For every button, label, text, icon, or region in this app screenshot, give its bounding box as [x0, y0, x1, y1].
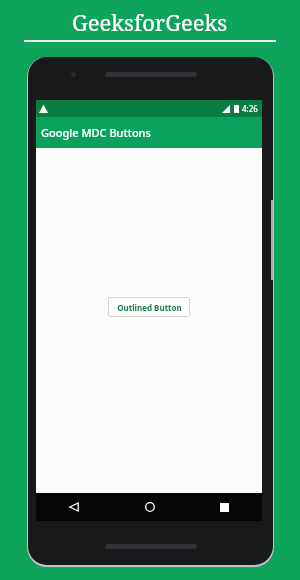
button[interactable]: Home	[112, 493, 187, 521]
staticText: Google MDC Buttons	[41, 125, 151, 140]
button[interactable]: Recent apps	[187, 493, 262, 521]
button[interactable]: Outlined Button	[108, 297, 190, 317]
staticText: 4:26	[242, 103, 258, 114]
staticText: GeeksforGeeks	[72, 7, 228, 37]
staticText: Outlined Button	[117, 302, 182, 313]
button[interactable]: Back	[36, 493, 112, 521]
